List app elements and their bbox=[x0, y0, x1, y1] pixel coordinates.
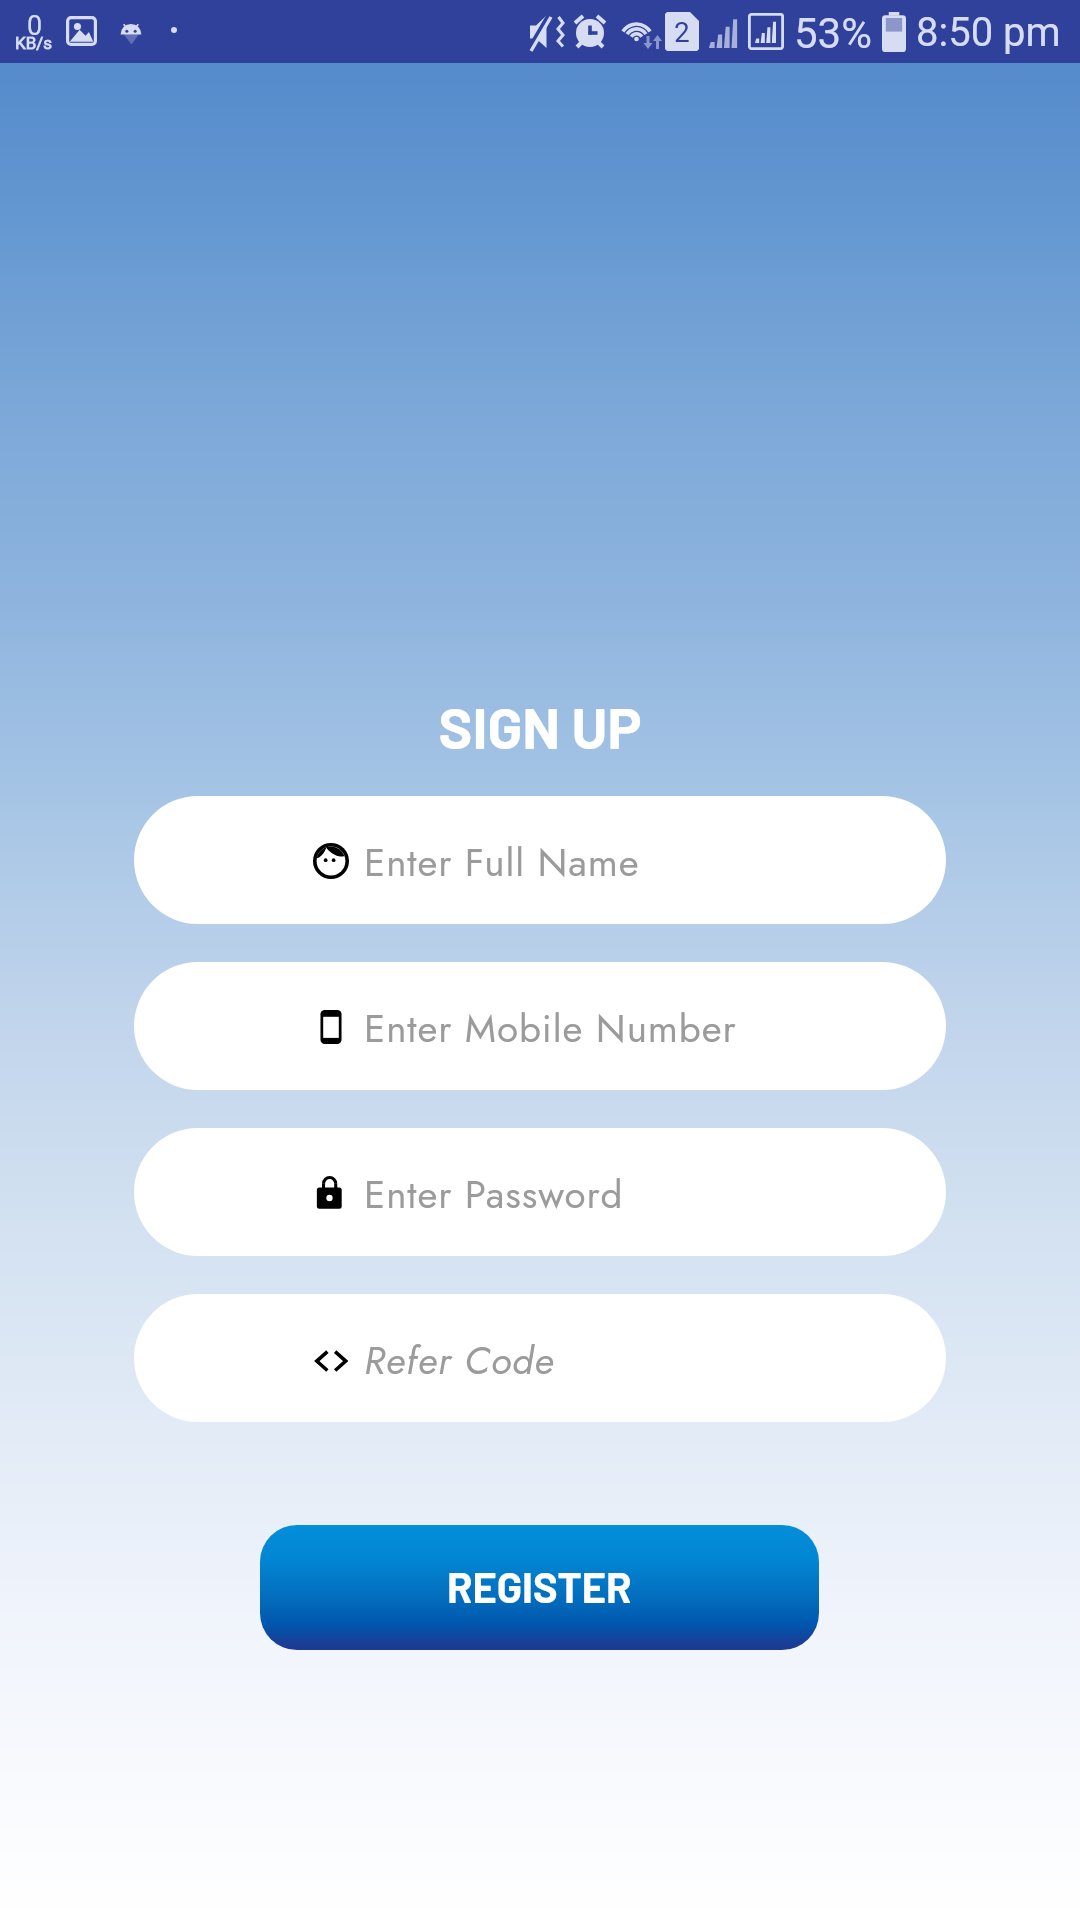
staticText: Enter Mobile Number bbox=[364, 1001, 737, 1057]
staticText: KB/s bbox=[15, 33, 53, 53]
staticText: 8:50 pm bbox=[916, 9, 1061, 56]
button[interactable]: Mobile phone bbox=[134, 962, 946, 1090]
other: Person bbox=[313, 843, 349, 879]
staticText: 53% bbox=[794, 9, 872, 58]
other: Password lock bbox=[313, 1175, 349, 1211]
button[interactable]: REGISTER bbox=[260, 1525, 819, 1650]
staticText: 2 bbox=[674, 16, 690, 49]
staticText: 0 bbox=[27, 10, 43, 42]
button[interactable]: Referral code bbox=[134, 1294, 946, 1422]
button[interactable]: Person bbox=[134, 796, 946, 924]
button[interactable]: Password lock bbox=[134, 1128, 946, 1256]
other: Referral code bbox=[313, 1341, 349, 1377]
staticText: Refer Code bbox=[364, 1333, 555, 1389]
other: Mobile phone bbox=[313, 1009, 349, 1045]
staticText: Enter Password bbox=[364, 1167, 624, 1223]
staticText: REGISTER bbox=[447, 1561, 632, 1611]
staticText: SIGN UP bbox=[0, 692, 1080, 760]
staticText: Enter Full Name bbox=[364, 835, 640, 891]
